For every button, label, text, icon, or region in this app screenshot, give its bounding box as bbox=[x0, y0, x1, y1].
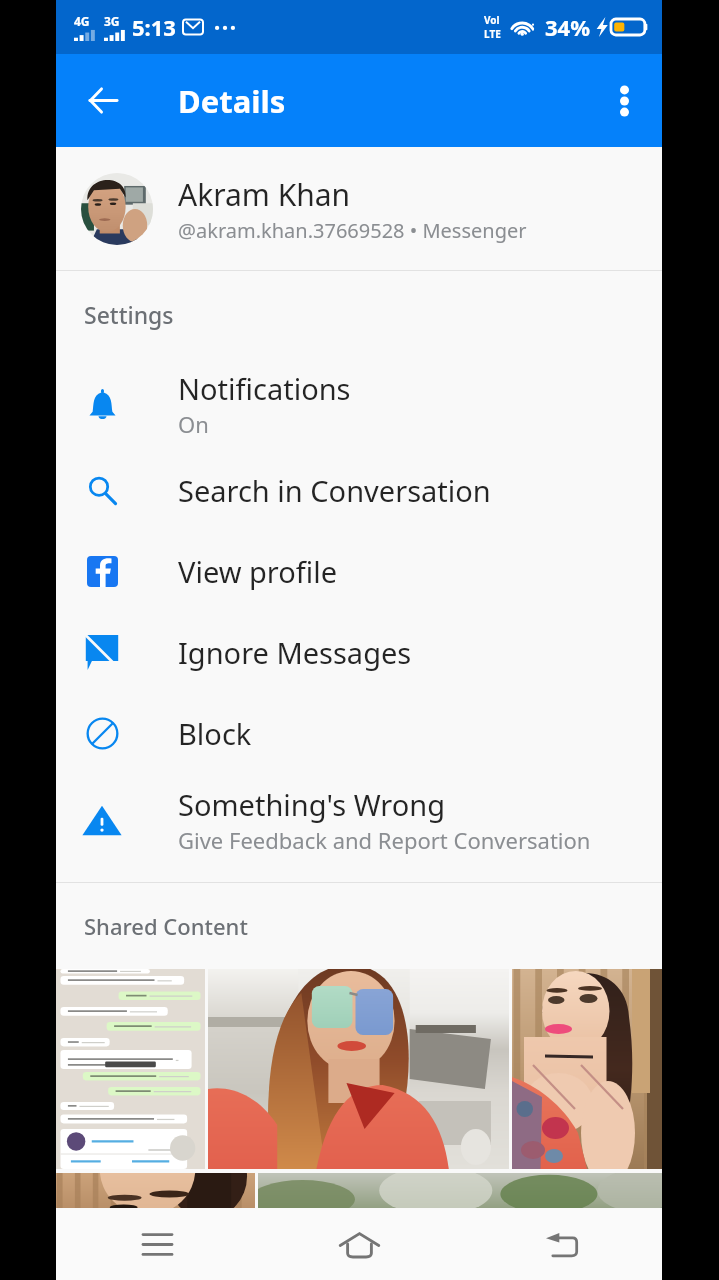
staticText: Give Feedback and Report Conversation bbox=[178, 825, 591, 855]
button[interactable]: Akram Khan bbox=[56, 147, 662, 270]
button[interactable] bbox=[258, 1173, 662, 1208]
staticText: @akram.khan.37669528 • Messenger bbox=[178, 217, 527, 244]
button[interactable]: Notifications bbox=[56, 358, 662, 450]
button[interactable]: Search in Conversation bbox=[56, 450, 662, 531]
button[interactable] bbox=[208, 969, 509, 1169]
staticText: Notifications bbox=[178, 369, 351, 408]
staticText: Akram Khan bbox=[178, 174, 351, 215]
button[interactable]: Block bbox=[56, 693, 662, 774]
staticText: Shared Content bbox=[84, 911, 248, 941]
button[interactable]: Recent apps bbox=[56, 1209, 258, 1280]
button[interactable]: More options bbox=[596, 73, 652, 129]
staticText: View profile bbox=[178, 552, 338, 591]
staticText: Search in Conversation bbox=[178, 471, 491, 510]
button[interactable] bbox=[56, 1173, 255, 1208]
button[interactable] bbox=[56, 969, 205, 1169]
staticText: Block bbox=[178, 714, 252, 753]
button[interactable]: Ignore Messages bbox=[56, 612, 662, 693]
staticText: 34% bbox=[545, 12, 591, 42]
staticText: 5:13 bbox=[132, 12, 176, 42]
staticText: LTE bbox=[484, 27, 501, 41]
staticText: Ignore Messages bbox=[178, 633, 412, 672]
button[interactable]: View profile bbox=[56, 531, 662, 612]
staticText: Details bbox=[178, 80, 286, 122]
staticText: Something's Wrong bbox=[178, 785, 446, 824]
button[interactable]: Something's Wrong bbox=[56, 774, 662, 866]
button[interactable]: Back bbox=[460, 1209, 662, 1280]
button[interactable]: Back bbox=[56, 54, 150, 147]
staticText: Vol bbox=[484, 13, 500, 27]
staticText: On bbox=[178, 409, 209, 439]
button[interactable] bbox=[512, 969, 662, 1169]
staticText: 3G bbox=[104, 13, 120, 29]
staticText: Settings bbox=[84, 299, 174, 330]
staticText: 4G bbox=[74, 13, 90, 29]
button[interactable]: Home bbox=[258, 1209, 460, 1280]
